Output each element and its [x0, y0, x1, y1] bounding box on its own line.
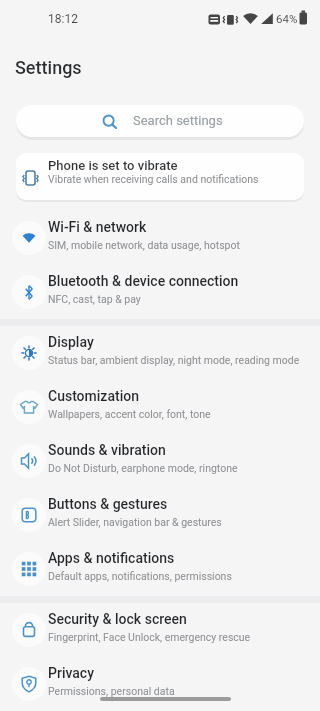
staticText: Vibrate when receiving calls and notific… [48, 173, 259, 185]
staticText: Search settings [133, 113, 223, 128]
staticText: SIM, mobile network, data usage, hotspot [48, 239, 240, 251]
staticText: Settings [15, 57, 82, 78]
button[interactable]: Buttons & gestures [0, 488, 320, 542]
button[interactable]: Security & lock screen [0, 603, 320, 657]
button[interactable]: Bluetooth & device connection [0, 265, 320, 319]
button[interactable]: Wi-Fi & network [0, 211, 320, 265]
staticText: Wi-Fi & network [48, 219, 147, 235]
staticText: Alert Slider, navigation bar & gestures [48, 516, 222, 528]
staticText: Wallpapers, accent color, font, tone [48, 408, 211, 420]
staticText: Status bar, ambient display, night mode,… [48, 354, 300, 366]
staticText: Buttons & gestures [48, 496, 168, 512]
button[interactable]: Search settings [16, 105, 304, 137]
staticText: Apps & notifications [48, 550, 175, 566]
staticText: 64% [276, 12, 298, 25]
button[interactable]: Phone is set to vibrate [16, 153, 304, 200]
staticText: Default apps, notifications, permissions [48, 570, 232, 582]
staticText: Fingerprint, Face Unlock, emergency resc… [48, 631, 251, 643]
staticText: Permissions, personal data [48, 685, 175, 697]
staticText: Privacy [48, 665, 95, 681]
staticText: Bluetooth & device connection [48, 273, 239, 289]
staticText: Security & lock screen [48, 611, 187, 627]
staticText: 18:12 [48, 12, 78, 26]
staticText: Do Not Disturb, earphone mode, ringtone [48, 462, 238, 474]
staticText: Sounds & vibration [48, 442, 166, 458]
staticText: NFC, cast, tap & pay [48, 293, 141, 305]
staticText: Display [48, 334, 94, 350]
button[interactable]: Privacy [0, 657, 320, 711]
button[interactable]: Customization [0, 380, 320, 434]
staticText: Phone is set to vibrate [48, 158, 178, 173]
staticText: Customization [48, 388, 139, 404]
button[interactable]: Display [0, 326, 320, 380]
button[interactable]: Sounds & vibration [0, 434, 320, 488]
button[interactable]: Apps & notifications [0, 542, 320, 596]
